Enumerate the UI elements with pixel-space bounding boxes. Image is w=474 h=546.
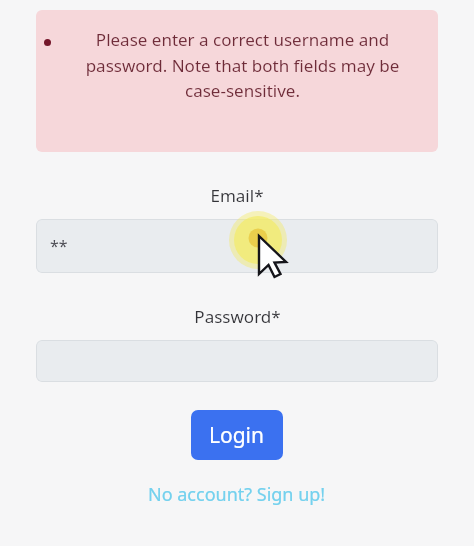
staticText: Password* [194, 305, 281, 328]
staticText: Login [209, 421, 265, 450]
staticText: ** [50, 235, 68, 257]
other: Pointer [0, 0, 474, 546]
button[interactable]: No account? Sign up! [148, 482, 326, 507]
button[interactable]: Login [191, 410, 283, 460]
staticText: Please enter a correct username and pass… [69, 28, 416, 102]
staticText: Email* [210, 184, 264, 207]
button[interactable]: ** [36, 219, 438, 273]
button[interactable] [36, 340, 438, 382]
staticText: No account? Sign up! [148, 482, 326, 507]
